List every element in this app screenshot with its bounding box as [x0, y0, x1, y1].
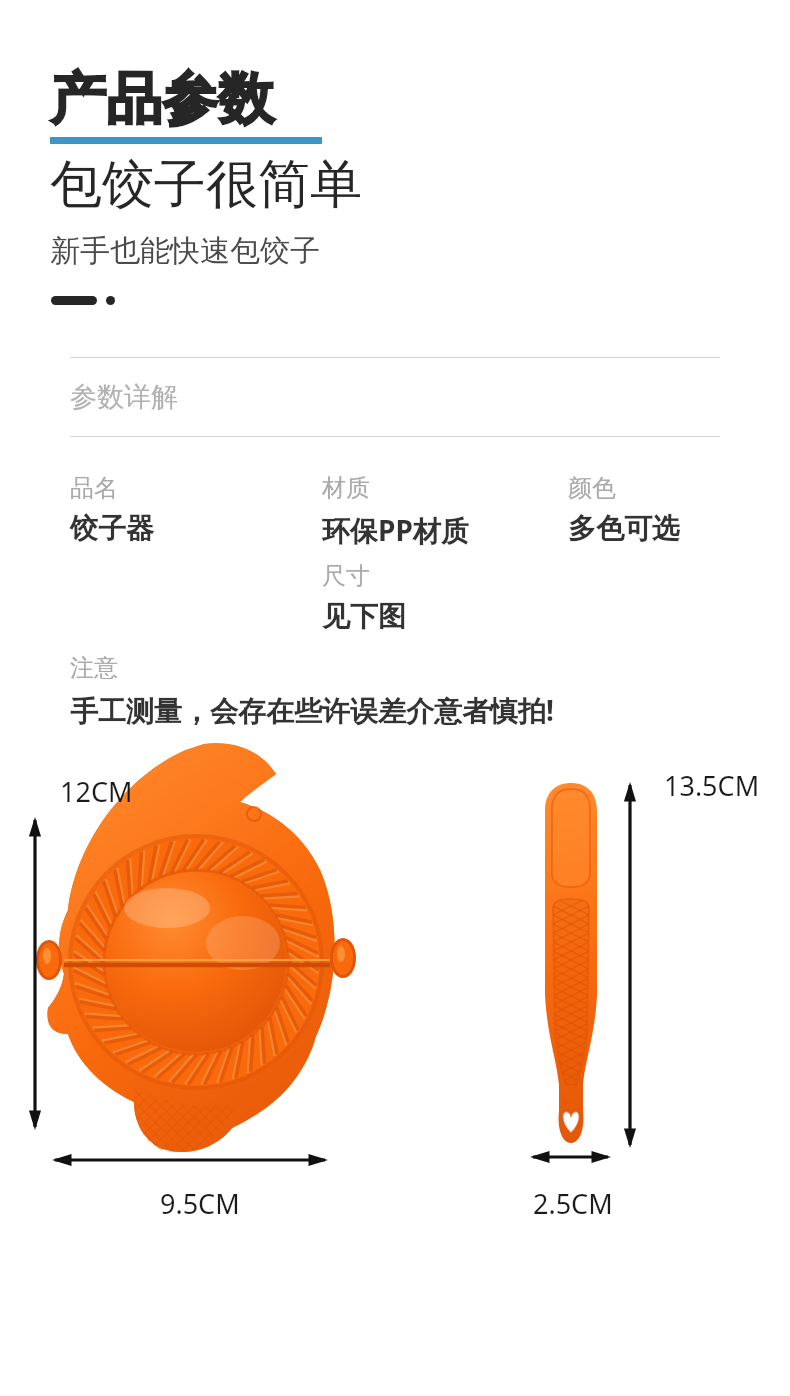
- staticText: 颜色: [568, 473, 616, 503]
- button[interactable]: 尺寸: [322, 561, 412, 634]
- staticText: 产品参数: [50, 64, 274, 135]
- staticText: 见下图: [322, 599, 406, 634]
- staticText: 12CM: [60, 773, 133, 810]
- button[interactable]: 注意: [70, 653, 560, 729]
- staticText: 材质: [322, 473, 370, 503]
- staticText: 环保PP材质: [322, 511, 469, 549]
- button[interactable]: 材质: [322, 473, 475, 549]
- button[interactable]: 颜色: [568, 473, 686, 546]
- staticText: 13.5CM: [664, 767, 760, 804]
- staticText: 包饺子很简单: [50, 152, 362, 218]
- staticText: 2.5CM: [533, 1185, 613, 1222]
- staticText: 饺子器: [70, 511, 154, 546]
- staticText: 尺寸: [322, 561, 370, 591]
- staticText: 品名: [70, 473, 118, 503]
- staticText: 手工测量，会存在些许误差介意者慎拍!: [70, 691, 554, 729]
- staticText: 注意: [70, 653, 118, 683]
- staticText: 多色可选: [568, 511, 680, 546]
- staticText: 参数详解: [70, 380, 178, 414]
- button[interactable]: 品名: [70, 473, 160, 546]
- staticText: 新手也能快速包饺子: [50, 232, 320, 270]
- staticText: 9.5CM: [160, 1185, 240, 1222]
